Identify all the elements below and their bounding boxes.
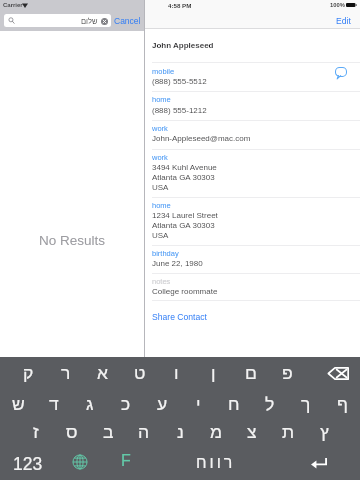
button[interactable]: רווח	[152, 444, 276, 480]
button[interactable]: ל	[252, 386, 288, 415]
staticText: notes	[152, 277, 171, 285]
staticText: ד	[49, 394, 59, 414]
button[interactable]: ב	[90, 415, 126, 444]
button[interactable]: ה	[126, 415, 162, 444]
button[interactable]: Return	[296, 444, 342, 480]
staticText: ם	[245, 363, 257, 383]
staticText: Share Contact	[152, 312, 207, 322]
button[interactable]: ת	[270, 415, 306, 444]
staticText: No Results	[39, 233, 106, 248]
staticText: ג	[86, 394, 94, 414]
button[interactable]: כ	[108, 386, 144, 415]
staticText: ק	[23, 363, 34, 383]
staticText: work	[152, 124, 168, 132]
button[interactable]: ש	[0, 386, 36, 415]
button[interactable]: Share Contact	[145, 301, 360, 323]
button[interactable]: י	[180, 386, 216, 415]
staticText: work	[152, 153, 168, 161]
button[interactable]: ף	[324, 386, 360, 415]
staticText: (888) 555-1212	[152, 106, 207, 115]
staticText: ט	[134, 363, 146, 383]
button[interactable]: ק	[10, 357, 47, 386]
staticText: שלום	[81, 17, 98, 25]
button[interactable]: F	[106, 444, 146, 480]
staticText: Cancel	[114, 16, 141, 25]
button[interactable]: ך	[288, 386, 324, 415]
staticText: 123	[13, 454, 43, 474]
button[interactable]	[145, 91, 360, 119]
button[interactable]: ם	[232, 357, 269, 386]
staticText: ל	[265, 394, 275, 414]
button[interactable]: ח	[216, 386, 252, 415]
staticText: ז	[33, 422, 39, 442]
staticText: צ	[247, 422, 257, 442]
button[interactable]: Send message	[335, 67, 347, 79]
button[interactable]: ו	[158, 357, 195, 386]
staticText: ף	[337, 394, 348, 414]
staticText: כ	[121, 394, 131, 414]
button[interactable]: ן	[195, 357, 232, 386]
button[interactable]	[145, 149, 360, 197]
button[interactable]: נ	[162, 415, 198, 444]
staticText: ש	[12, 394, 25, 414]
staticText: י	[196, 394, 201, 414]
button[interactable]	[145, 197, 360, 245]
button[interactable]: ס	[54, 415, 90, 444]
staticText: א	[97, 363, 108, 383]
staticText: Edit	[336, 16, 351, 26]
button[interactable]	[145, 245, 360, 273]
staticText: מ	[210, 422, 223, 442]
staticText: ן	[211, 363, 216, 383]
staticText: ח	[228, 394, 240, 414]
button[interactable]: ג	[72, 386, 108, 415]
staticText: 3494 Kuhl Avenue	[152, 163, 217, 172]
staticText: John-Appleseed@mac.com	[152, 134, 251, 143]
button[interactable]: שלום	[4, 14, 111, 27]
button[interactable]: Edit	[332, 14, 355, 27]
button[interactable]: צ	[234, 415, 270, 444]
staticText: June 22, 1980	[152, 259, 203, 268]
staticText: ב	[103, 422, 114, 442]
staticText: פ	[282, 363, 293, 383]
button[interactable]: ע	[144, 386, 180, 415]
staticText: F	[121, 452, 131, 470]
button[interactable]: ד	[36, 386, 72, 415]
button[interactable]: מ	[198, 415, 234, 444]
staticText: 100%	[330, 2, 345, 8]
button[interactable]: פ	[269, 357, 306, 386]
staticText: ך	[301, 394, 311, 414]
staticText: home	[152, 201, 171, 209]
button[interactable]: Clear text	[101, 18, 108, 25]
staticText: USA	[152, 231, 169, 240]
staticText: mobile	[152, 67, 175, 75]
staticText: John Appleseed	[152, 41, 214, 50]
staticText: ס	[66, 422, 78, 442]
staticText: 4:58 PM	[168, 2, 192, 9]
button[interactable]: Cancel	[112, 14, 142, 27]
staticText: Atlanta GA 30303	[152, 221, 215, 230]
staticText: ע	[157, 394, 168, 414]
staticText: רווח	[196, 454, 236, 472]
button[interactable]: Backspace	[309, 357, 360, 386]
staticText: (888) 555-5512	[152, 77, 207, 86]
staticText: ת	[282, 422, 295, 442]
button[interactable]	[145, 120, 360, 148]
staticText: ו	[174, 363, 179, 383]
staticText: נ	[177, 422, 184, 442]
staticText: ה	[138, 422, 150, 442]
button[interactable]: Switch keyboard language	[60, 444, 100, 480]
button[interactable]: א	[84, 357, 121, 386]
staticText: birthday	[152, 249, 179, 257]
staticText: Atlanta GA 30303	[152, 173, 215, 182]
staticText: USA	[152, 183, 169, 192]
button[interactable]: 123	[4, 444, 52, 480]
button[interactable]	[145, 62, 360, 90]
button[interactable]: ט	[121, 357, 158, 386]
button[interactable]: ז	[18, 415, 54, 444]
staticText: Carrier	[3, 2, 23, 9]
button[interactable]: ר	[47, 357, 84, 386]
staticText: home	[152, 95, 171, 103]
button[interactable]: ץ	[306, 415, 342, 444]
button[interactable]	[145, 273, 360, 301]
staticText: 1234 Laurel Street	[152, 211, 218, 220]
